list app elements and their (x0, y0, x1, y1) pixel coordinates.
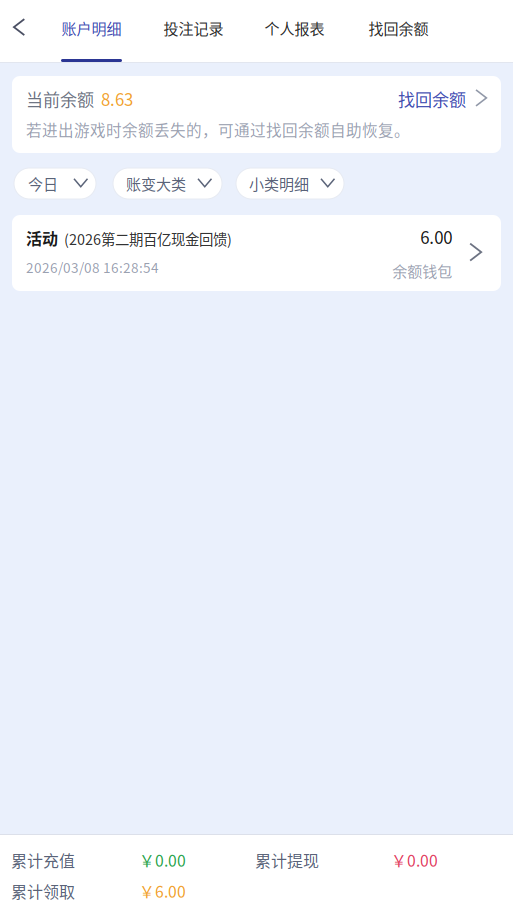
staticText: 个人报表 (264, 17, 324, 39)
button[interactable]: 投注记录 (163, 0, 224, 56)
staticText: 余额钱包 (392, 260, 452, 282)
staticText: 今日 (28, 173, 58, 194)
staticText: 2026/03/08 16:28:54 (26, 257, 159, 277)
staticText: 找回余额 (398, 86, 466, 111)
button[interactable]: Back (0, 0, 40, 56)
staticText: (2026第二期百亿现金回馈) (64, 228, 232, 249)
staticText: 账变大类 (126, 173, 186, 194)
staticText: ￥0.00 (391, 849, 438, 871)
staticText: 累计充值 (11, 848, 75, 872)
button[interactable]: 个人报表 (264, 0, 325, 56)
staticText: 8.63 (101, 86, 133, 111)
staticText: 累计提现 (255, 848, 319, 872)
button[interactable]: 找回余额 (368, 0, 429, 56)
staticText: 账户明细 (61, 17, 121, 39)
button[interactable]: 找回余额 (398, 86, 488, 111)
staticText: 小类明细 (249, 173, 309, 194)
button[interactable]: 账变大类 (113, 168, 222, 199)
button[interactable]: 活动 (12, 215, 501, 291)
staticText: 活动 (26, 226, 58, 249)
button[interactable]: 今日 (14, 168, 96, 199)
staticText: 累计领取 (11, 879, 75, 903)
button[interactable]: 账户明细 (61, 0, 122, 56)
staticText: 若进出游戏时余额丢失的，可通过找回余额自助恢复。 (26, 118, 410, 141)
staticText: 6.00 (420, 224, 452, 249)
button[interactable]: 小类明细 (236, 168, 344, 199)
staticText: 投注记录 (163, 17, 223, 39)
staticText: 当前余额 (26, 86, 94, 111)
staticText: 找回余额 (368, 17, 428, 39)
staticText: ￥6.00 (139, 880, 186, 902)
staticText: ￥0.00 (139, 849, 186, 871)
